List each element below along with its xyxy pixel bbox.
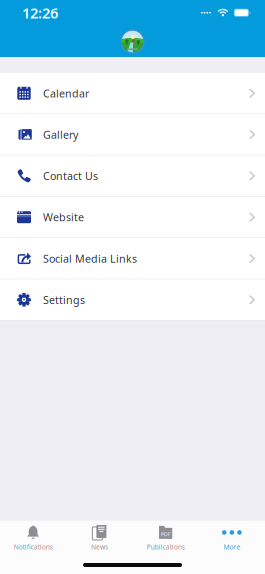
staticText: 12:26: [22, 3, 58, 22]
staticText: Social Media Links: [43, 251, 137, 266]
staticText: Calendar: [43, 86, 89, 100]
staticText: News: [91, 542, 108, 551]
staticText: Gallery: [43, 127, 78, 142]
button[interactable]: News: [66, 520, 132, 554]
button[interactable]: Calendar: [0, 73, 265, 114]
staticText: Contact Us: [43, 169, 98, 183]
button[interactable]: Settings: [0, 279, 265, 321]
button[interactable]: Gallery: [0, 114, 265, 156]
button[interactable]: PDF: [132, 520, 199, 554]
staticText: Website: [43, 210, 84, 224]
staticText: Notifications: [14, 542, 53, 551]
staticText: Settings: [43, 293, 85, 307]
button[interactable]: Website: [0, 197, 265, 238]
staticText: PDF: [161, 531, 171, 538]
button[interactable]: Social Media Links: [0, 238, 265, 279]
button[interactable]: More: [199, 520, 265, 554]
button[interactable]: Notifications: [0, 520, 66, 554]
button[interactable]: Contact Us: [0, 156, 265, 197]
staticText: Publications: [147, 542, 185, 551]
staticText: More: [223, 542, 240, 551]
